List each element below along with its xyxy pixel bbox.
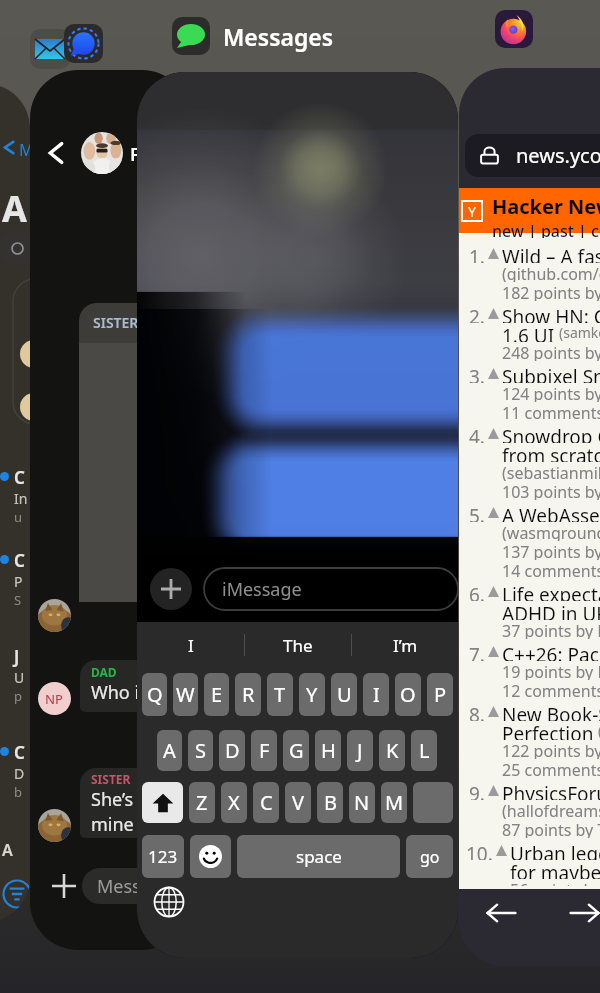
button[interactable]: M — [381, 782, 407, 823]
staticText: 56 points by bs — [510, 879, 600, 886]
staticText: Perfection — [502, 721, 594, 740]
button[interactable]: Y — [299, 673, 325, 716]
button[interactable]: 3. — [459, 364, 600, 421]
button[interactable]: X — [221, 782, 247, 823]
button[interactable]: Back — [485, 897, 517, 929]
button[interactable]: Firefox — [495, 10, 533, 48]
staticText: (sebastianmihai.c — [502, 462, 600, 481]
staticText: P — [434, 681, 447, 708]
button[interactable]: C — [253, 782, 279, 823]
staticText: 87 points by Th — [502, 819, 600, 838]
button[interactable]: 2. — [459, 304, 600, 361]
button[interactable]: S — [188, 730, 213, 771]
button[interactable]: Backspace — [413, 782, 453, 823]
staticText: M — [19, 139, 30, 161]
button[interactable]: Messages — [172, 17, 334, 55]
button[interactable]: 6. — [459, 582, 600, 639]
button[interactable]: L — [411, 730, 437, 771]
button[interactable]: Switch keyboard — [153, 886, 185, 918]
staticText: go — [420, 846, 440, 868]
staticText: A — [163, 737, 176, 764]
button[interactable]: 10. — [459, 841, 600, 886]
staticText: 11 comments — [502, 402, 600, 421]
staticText: 137 points by t — [502, 541, 600, 560]
button[interactable]: Emoji — [190, 835, 231, 878]
button[interactable]: I’m — [352, 622, 458, 668]
button[interactable]: U — [331, 673, 357, 716]
button[interactable]: Fa — [30, 70, 190, 950]
staticText: B — [324, 789, 337, 816]
staticText: E — [211, 681, 223, 708]
button[interactable]: 5. — [459, 503, 600, 579]
staticText: Who is — [91, 680, 148, 705]
button[interactable]: F — [251, 730, 277, 771]
button[interactable]: O — [395, 673, 421, 716]
button[interactable]: I — [137, 622, 244, 668]
button[interactable]: news.ycombinator.com — [465, 134, 600, 177]
staticText: Q — [147, 681, 163, 708]
button[interactable]: 123 — [142, 835, 184, 878]
button[interactable]: H — [315, 730, 341, 771]
button[interactable]: R — [235, 673, 261, 716]
button[interactable]: Q — [142, 673, 167, 716]
staticText: The — [283, 634, 313, 657]
button[interactable]: J — [347, 730, 373, 771]
button[interactable]: The — [245, 622, 351, 668]
button[interactable]: Add attachment — [137, 72, 458, 958]
staticText: W — [176, 681, 195, 708]
button[interactable]: D — [219, 730, 245, 771]
button[interactable]: V — [285, 782, 311, 823]
button[interactable]: T — [267, 673, 293, 716]
button[interactable]: B — [317, 782, 343, 823]
button[interactable]: A — [157, 730, 182, 771]
staticText: C — [14, 466, 25, 489]
button[interactable]: 7. — [459, 642, 600, 699]
staticText: 182 points by h — [502, 282, 600, 301]
staticText: G — [289, 737, 304, 764]
button[interactable]: M — [0, 84, 30, 922]
staticText: D — [225, 737, 240, 764]
staticText: ADHD in UK: — [502, 601, 600, 620]
staticText: N — [354, 789, 370, 816]
button[interactable]: N — [349, 782, 375, 823]
staticText: 9. — [469, 781, 485, 800]
staticText: (hallofdreams.org — [502, 800, 600, 819]
button[interactable]: K — [379, 730, 405, 771]
staticText: 248 points by s — [502, 342, 600, 361]
button[interactable]: Forward — [569, 897, 600, 929]
staticText: 3. — [469, 364, 485, 383]
button[interactable]: Signal — [64, 24, 103, 63]
staticText: NP — [45, 690, 64, 708]
button[interactable]: 1. — [459, 244, 600, 301]
staticText: U — [14, 668, 25, 687]
staticText: iMessage — [222, 577, 302, 602]
staticText: 25 comments — [502, 759, 600, 778]
staticText: U — [337, 681, 352, 708]
button[interactable]: space — [237, 835, 400, 878]
button[interactable]: E — [204, 673, 229, 716]
staticText: 8. — [469, 702, 485, 721]
button[interactable]: Shift — [142, 782, 183, 823]
staticText: SISTER — [91, 771, 131, 787]
button[interactable]: W — [173, 673, 198, 716]
button[interactable]: G — [283, 730, 309, 771]
button[interactable]: 4. — [459, 424, 600, 500]
button[interactable]: 8. — [459, 702, 600, 778]
button[interactable]: news.ycombinator.com — [459, 68, 600, 966]
staticText: news.ycombinator.com — [516, 142, 600, 169]
staticText: Snowdrop OS — [502, 424, 600, 443]
staticText: PhysicsForun — [502, 781, 600, 800]
button[interactable]: P — [427, 673, 453, 716]
staticText: Hacker News — [492, 193, 600, 220]
button[interactable]: I — [363, 673, 389, 716]
staticText: A — [2, 184, 27, 233]
button[interactable]: 9. — [459, 781, 600, 838]
staticText: from scratch, — [502, 443, 600, 462]
button[interactable]: Add attachment — [150, 568, 192, 610]
staticText: S — [14, 591, 22, 609]
staticText: C — [14, 741, 25, 764]
button[interactable]: Z — [189, 782, 215, 823]
button[interactable]: Mail — [30, 29, 70, 69]
staticText: mine — [91, 812, 134, 837]
button[interactable]: go — [406, 835, 453, 878]
